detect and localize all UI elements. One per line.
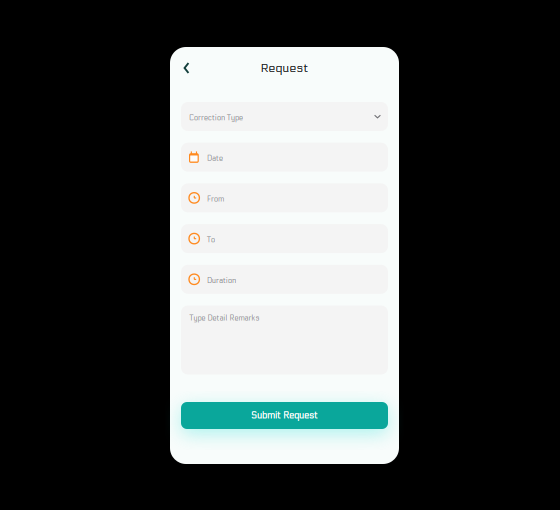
button[interactable]: Duration [181,265,388,294]
button[interactable]: From [181,183,388,212]
staticText: Date [207,154,223,163]
staticText: Request [260,61,308,75]
staticText: Duration [207,276,236,285]
button[interactable]: Date [181,143,388,172]
button[interactable]: Back [173,55,199,81]
button[interactable]: To [181,224,388,253]
staticText: Submit Request [251,410,318,421]
staticText: Correction Type [189,113,243,122]
button[interactable]: Correction Type [181,102,388,131]
staticText: Type Detail Remarks [189,314,259,322]
button[interactable]: Submit Request [181,402,388,429]
staticText: From [207,195,224,204]
button[interactable]: Type Detail Remarks [181,305,388,374]
staticText: To [207,236,215,244]
